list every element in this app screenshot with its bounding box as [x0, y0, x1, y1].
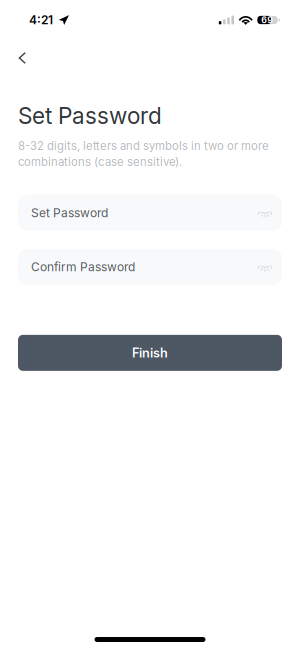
- button[interactable]: Back: [6, 43, 38, 73]
- button[interactable]: Show Confirm Password: [240, 249, 282, 285]
- staticText: Set Password: [18, 102, 162, 129]
- button[interactable]: Show Set Password: [240, 195, 282, 231]
- staticText: 8-32 digits, letters and symbols in two …: [18, 139, 269, 153]
- staticText: 4:21: [29, 13, 53, 27]
- staticText: Confirm Password: [31, 260, 135, 274]
- staticText: combinations (case sensitive).: [18, 155, 182, 169]
- staticText: Set Password: [31, 206, 108, 220]
- staticText: 69: [261, 15, 273, 25]
- button[interactable]: Finish: [18, 335, 282, 371]
- staticText: Finish: [132, 345, 168, 360]
